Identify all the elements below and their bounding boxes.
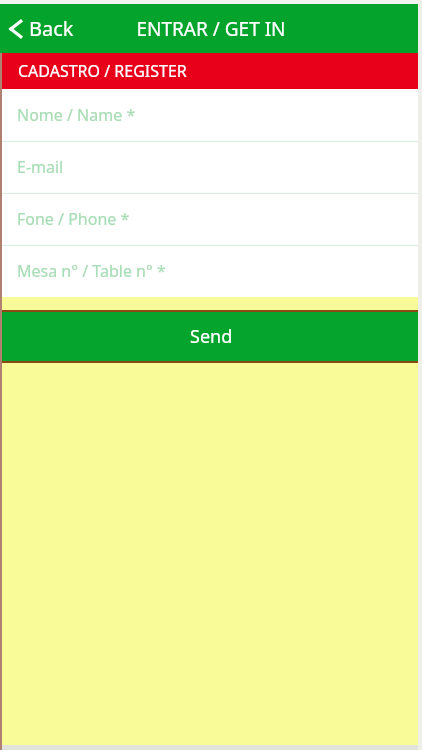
button[interactable]: E-mail — [0, 141, 422, 193]
button[interactable]: Nome / Name * — [0, 89, 422, 141]
button[interactable]: Mesa n° / Table n° * — [0, 245, 422, 297]
button[interactable]: Fone / Phone * — [0, 193, 422, 245]
staticText: Send — [190, 324, 233, 349]
button[interactable]: Send — [2, 312, 420, 361]
button[interactable]: Back — [0, 4, 86, 53]
staticText: ENTRAR / GET IN — [136, 16, 286, 42]
staticText: Back — [29, 15, 74, 42]
staticText: Fone / Phone * — [17, 208, 130, 230]
staticText: CADASTRO / REGISTER — [18, 60, 187, 82]
staticText: Nome / Name * — [17, 104, 136, 126]
staticText: Mesa n° / Table n° * — [17, 260, 166, 282]
staticText: E-mail — [17, 156, 64, 178]
other: Back — [8, 16, 24, 42]
